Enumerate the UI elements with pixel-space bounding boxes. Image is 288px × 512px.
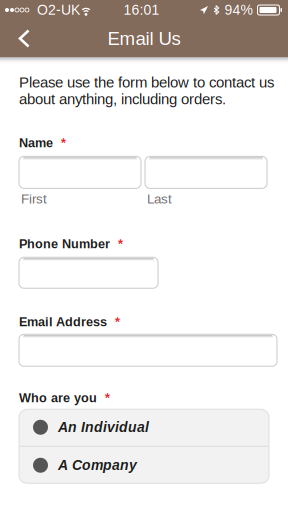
staticText: Phone Number xyxy=(19,237,110,251)
staticText: An Individual xyxy=(58,419,149,435)
staticText: Name xyxy=(19,136,53,150)
staticText: 16:01 xyxy=(123,2,159,18)
staticText: * xyxy=(110,237,123,251)
button[interactable]: An Individual xyxy=(19,409,269,446)
staticText: * xyxy=(53,136,66,150)
staticText: A Company xyxy=(58,457,137,473)
staticText: Last xyxy=(147,191,172,206)
staticText: First xyxy=(21,191,47,206)
staticText: Email Us xyxy=(107,28,180,49)
staticText: * xyxy=(97,391,110,405)
staticText: 94% xyxy=(224,2,252,18)
staticText: Who are you xyxy=(19,391,97,405)
staticText: Email Address xyxy=(19,315,107,329)
staticText: O2-UK xyxy=(37,2,80,18)
button[interactable]: A Company xyxy=(19,447,269,484)
staticText: Please use the form below to contact us … xyxy=(19,74,274,107)
button[interactable]: Back xyxy=(0,20,44,57)
staticText: * xyxy=(107,315,120,329)
